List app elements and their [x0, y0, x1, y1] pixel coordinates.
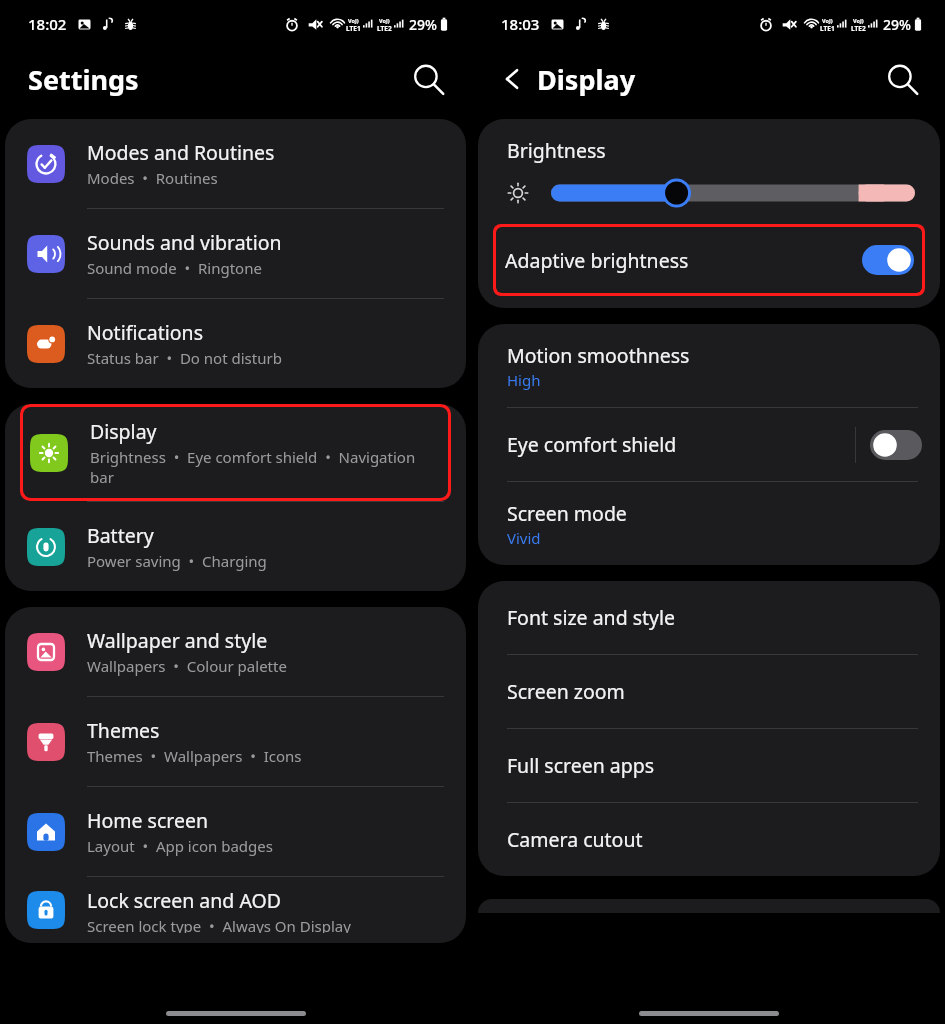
- button[interactable]: Back: [491, 59, 531, 99]
- staticText: VoJ): [853, 17, 864, 24]
- staticText: VoJ): [348, 17, 359, 24]
- staticText: Lock screen and AOD: [87, 887, 281, 914]
- staticText: 29%: [883, 15, 911, 34]
- staticText: Settings: [28, 61, 139, 98]
- button[interactable]: Screen mode: [478, 482, 940, 565]
- staticText: Status bar • Do not disturb: [87, 348, 282, 368]
- staticText: Brightness • Eye comfort shield • Naviga…: [90, 447, 442, 487]
- staticText: Vivid: [507, 528, 541, 548]
- staticText: Power saving • Charging: [87, 551, 267, 571]
- staticText: Font size and style: [507, 604, 676, 631]
- staticText: LTE2: [377, 24, 392, 33]
- staticText: 18:03: [501, 14, 540, 34]
- staticText: Modes • Routines: [87, 168, 218, 188]
- staticText: Themes: [87, 717, 160, 744]
- button[interactable]: Motion smoothness: [478, 324, 940, 407]
- button[interactable]: Search: [407, 58, 449, 100]
- staticText: VoJ): [822, 17, 833, 24]
- button[interactable]: Themes: [5, 697, 466, 786]
- staticText: Layout • App icon badges: [87, 836, 273, 856]
- button[interactable]: Eye comfort shield: [478, 408, 940, 481]
- button[interactable]: Wallpaper and style: [5, 607, 466, 696]
- staticText: Full screen apps: [507, 752, 655, 779]
- staticText: Camera cutout: [507, 826, 643, 853]
- staticText: Motion smoothness: [507, 342, 690, 369]
- staticText: 18:02: [28, 14, 67, 34]
- button[interactable]: Screen zoom: [478, 655, 940, 728]
- staticText: Wallpapers • Colour palette: [87, 656, 287, 676]
- button[interactable]: Lock screen and AOD: [5, 877, 466, 943]
- staticText: High: [507, 370, 541, 390]
- staticText: LTE1: [820, 24, 835, 33]
- staticText: Display: [537, 61, 636, 98]
- button[interactable]: Camera cutout: [478, 803, 940, 876]
- staticText: Display: [90, 418, 157, 445]
- staticText: Brightness: [507, 137, 606, 164]
- button[interactable]: Display: [23, 407, 448, 498]
- staticText: LTE1: [346, 24, 361, 33]
- button[interactable]: Home screen: [5, 787, 466, 876]
- staticText: Wallpaper and style: [87, 627, 268, 654]
- button[interactable]: Toggle on: [862, 245, 914, 275]
- staticText: 29%: [409, 15, 437, 34]
- staticText: Sounds and vibration: [87, 229, 282, 256]
- button[interactable]: Battery: [5, 502, 466, 591]
- button[interactable]: Notifications: [5, 299, 466, 388]
- staticText: Notifications: [87, 319, 203, 346]
- button[interactable]: Sounds and vibration: [5, 209, 466, 298]
- staticText: Screen lock type • Always On Display: [87, 916, 351, 933]
- staticText: Home screen: [87, 807, 208, 834]
- button[interactable]: Font size and style: [478, 581, 940, 654]
- staticText: Modes and Routines: [87, 139, 275, 166]
- staticText: LTE2: [851, 24, 866, 33]
- button[interactable]: Modes and Routines: [5, 119, 466, 208]
- staticText: Screen zoom: [507, 678, 625, 705]
- staticText: Sound mode • Ringtone: [87, 258, 262, 278]
- staticText: Eye comfort shield: [507, 431, 855, 458]
- staticText: Adaptive brightness: [505, 247, 862, 274]
- button[interactable]: Search: [881, 58, 923, 100]
- button[interactable]: Full screen apps: [478, 729, 940, 802]
- button[interactable]: Brightness slider: [551, 178, 915, 208]
- staticText: Screen mode: [507, 500, 627, 527]
- staticText: Battery: [87, 522, 154, 549]
- button[interactable]: Toggle off: [870, 430, 922, 460]
- staticText: Themes • Wallpapers • Icons: [87, 746, 302, 766]
- button[interactable]: Adaptive brightness: [496, 227, 922, 293]
- staticText: VoJ): [379, 17, 390, 24]
